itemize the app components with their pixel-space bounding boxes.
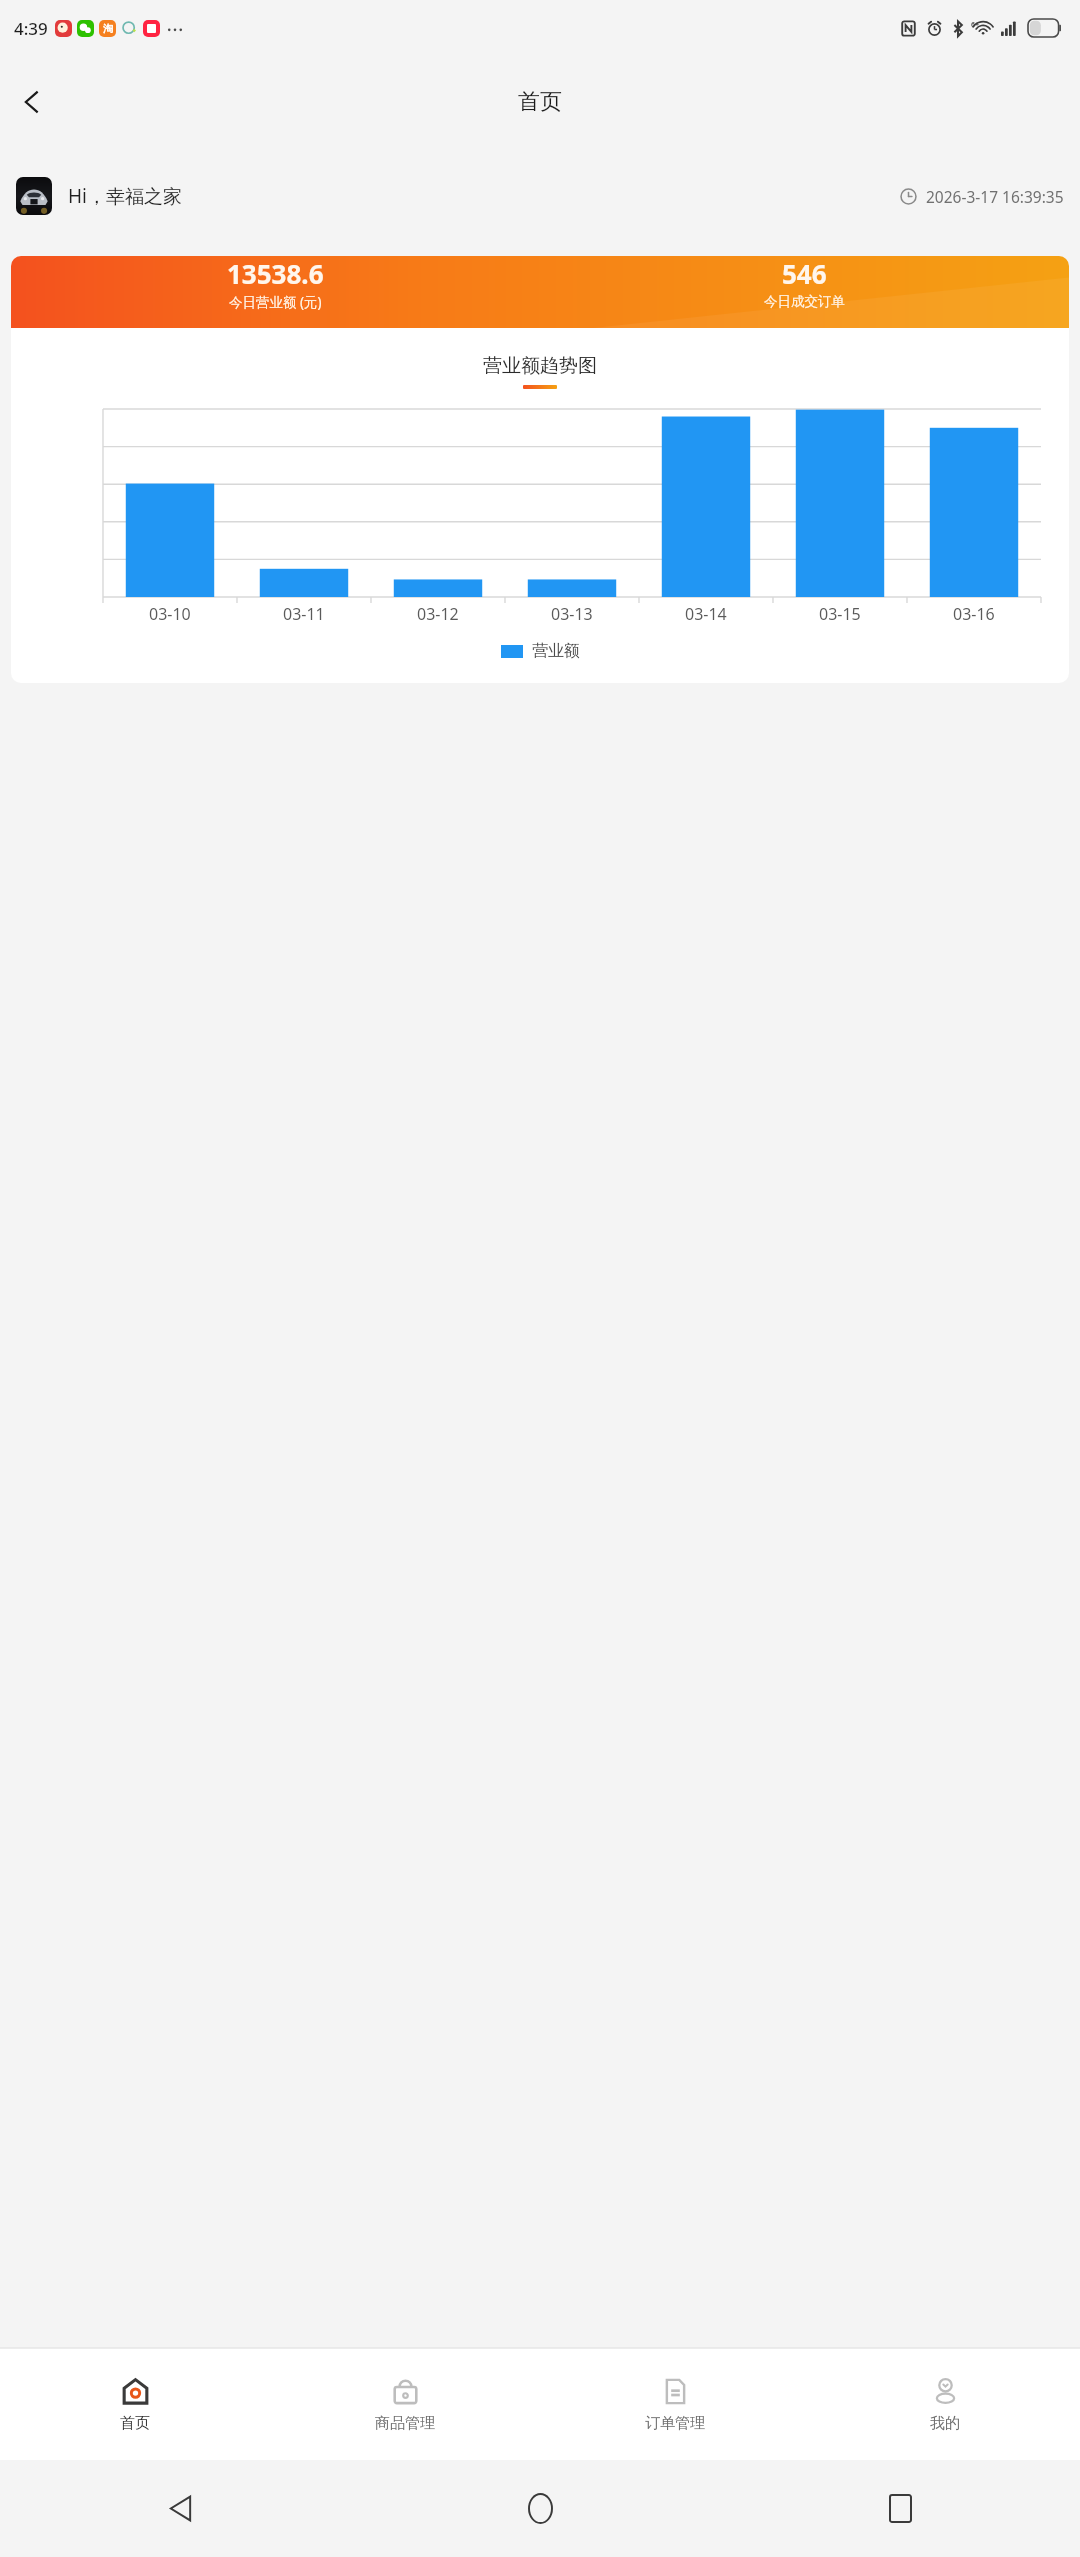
staticText: 13538.6 [227, 256, 324, 291]
staticText: 6+ [971, 20, 980, 30]
button[interactable]: 商品管理 [270, 2348, 540, 2460]
staticText: 今日营业额 (元) [229, 293, 322, 311]
staticText: 淘 [103, 22, 113, 35]
staticText: 03-11 [283, 603, 325, 625]
staticText: 4:39 [14, 17, 48, 40]
staticText: 03-16 [953, 603, 995, 625]
button[interactable]: 首页 [0, 2348, 270, 2460]
button[interactable]: Avatar [16, 177, 52, 215]
staticText: 03-15 [819, 603, 861, 625]
staticText: 03-10 [149, 603, 191, 625]
button[interactable]: 我的 [810, 2348, 1080, 2460]
staticText: 03-13 [551, 603, 593, 625]
button[interactable]: Home [360, 2460, 720, 2557]
staticText: 03-12 [417, 603, 459, 625]
staticText: 03-14 [685, 603, 727, 625]
staticText: 我的 [930, 2414, 960, 2433]
staticText: 今日成交订单 [764, 293, 845, 310]
button[interactable]: 订单管理 [540, 2348, 810, 2460]
button[interactable]: 13538.6 [11, 256, 1069, 328]
staticText: 营业额趋势图 [11, 354, 1069, 378]
button[interactable]: Recent apps [720, 2460, 1080, 2557]
staticText: 订单管理 [645, 2414, 705, 2433]
staticText: 营业额 [532, 641, 580, 661]
button[interactable]: Back [0, 2460, 360, 2557]
staticText: 546 [782, 256, 827, 291]
button[interactable]: Back [0, 70, 64, 134]
staticText: 首页 [518, 88, 562, 116]
staticText: Hi，幸福之家 [68, 183, 182, 209]
staticText: 2026-3-17 16:39:35 [926, 186, 1064, 207]
staticText: 商品管理 [375, 2414, 435, 2433]
staticText: 首页 [120, 2414, 150, 2433]
